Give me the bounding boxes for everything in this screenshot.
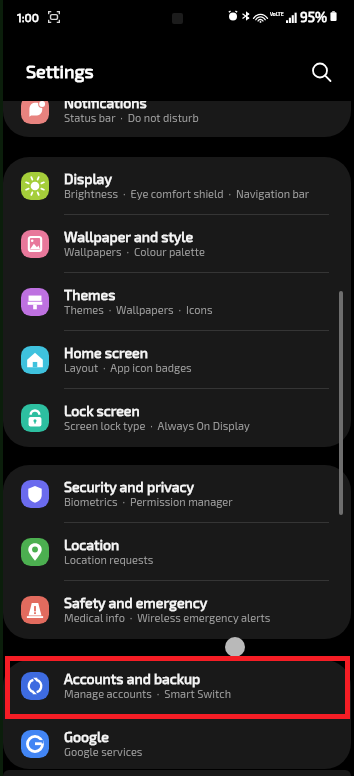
staticText: Themes · Wallpapers · Icons bbox=[64, 303, 213, 316]
staticText: Wallpaper and style bbox=[64, 228, 194, 245]
staticText: Home screen bbox=[64, 344, 148, 361]
staticText: Manage accounts · Smart Switch bbox=[64, 687, 232, 700]
staticText: Location bbox=[64, 536, 120, 553]
staticText: Google bbox=[64, 728, 109, 745]
staticText: Screen lock type · Always On Display bbox=[64, 419, 250, 432]
staticText: Lock screen bbox=[64, 402, 140, 419]
staticText: Google services bbox=[64, 745, 143, 758]
button[interactable]: Location bbox=[3, 523, 351, 581]
staticText: Layout · App icon badges bbox=[64, 361, 192, 374]
button[interactable]: Search bbox=[305, 55, 335, 85]
button[interactable]: Wallpaper and style bbox=[3, 215, 351, 273]
button[interactable]: Display bbox=[3, 157, 351, 215]
staticText: Biometrics · Permission manager bbox=[64, 495, 233, 508]
staticText: Accounts and backup bbox=[64, 670, 201, 687]
staticText: Medical info · Wireless emergency alerts bbox=[64, 611, 271, 624]
staticText: Security and privacy bbox=[64, 478, 195, 495]
staticText: Brightness · Eye comfort shield · Naviga… bbox=[64, 187, 310, 200]
button[interactable]: Notifications bbox=[3, 101, 351, 128]
staticText: Settings bbox=[26, 60, 94, 82]
staticText: Display bbox=[64, 170, 112, 187]
staticText: Themes bbox=[64, 286, 116, 303]
button[interactable]: Lock screen bbox=[3, 389, 351, 447]
button[interactable]: Themes bbox=[3, 273, 351, 331]
button[interactable]: Safety and emergency bbox=[3, 581, 351, 639]
staticText: Notifications bbox=[64, 101, 147, 111]
button[interactable]: Google bbox=[3, 715, 351, 769]
staticText: 95% bbox=[300, 9, 328, 25]
button[interactable]: Security and privacy bbox=[3, 465, 351, 523]
staticText: 1:00 bbox=[17, 10, 40, 24]
staticText: Safety and emergency bbox=[64, 594, 208, 611]
staticText: Location requests bbox=[64, 553, 154, 566]
staticText: Status bar · Do not disturb bbox=[64, 111, 199, 124]
staticText: VoLTE bbox=[270, 11, 284, 17]
button[interactable]: Accounts and backup bbox=[3, 660, 351, 715]
button[interactable]: Home screen bbox=[3, 331, 351, 389]
staticText: Wallpapers · Colour palette bbox=[64, 245, 205, 258]
